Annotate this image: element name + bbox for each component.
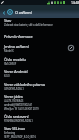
staticText: Zobrazit stav baterie, sítě a další info… (4, 23, 53, 27)
staticText: Číslo sestavení (4, 114, 29, 119)
button[interactable]: Stav SELinux (0, 124, 79, 140)
staticText: Právní informace (4, 34, 33, 39)
staticText: Číslo modelu (4, 57, 26, 62)
staticText: Verze jádra (4, 94, 23, 99)
button[interactable]: Verze Android (0, 66, 79, 79)
button[interactable]: Právní informace (0, 30, 79, 41)
staticText: 14:48 (71, 0, 79, 5)
staticText: Stav (4, 18, 12, 23)
button[interactable]: Verze základního pásma (0, 79, 79, 92)
staticText: Stav SELinux (4, 126, 26, 131)
staticText: Model X (4, 49, 14, 53)
staticText: Enforcing SEPF_SM-G950F_8.0.0_0016 (4, 131, 36, 139)
button[interactable]: Číslo sestavení (0, 112, 79, 124)
staticText: 8.0.0 (4, 74, 10, 78)
staticText: Jméno zařízení (4, 44, 29, 49)
button[interactable]: Stav (0, 18, 79, 30)
staticText: Verze základního pásma (4, 82, 45, 87)
button[interactable]: Upravit jméno zařízení (67, 44, 75, 52)
staticText: Verze Android (4, 69, 28, 74)
button[interactable]: Zpět (0, 9, 7, 16)
staticText: 4.4.78-15090843 android@SWDD5902 #1 Wed … (4, 99, 39, 111)
button[interactable]: Verze jádra (0, 92, 79, 112)
staticText: O zařízení (15, 10, 32, 15)
button[interactable]: Jméno zařízení (0, 41, 79, 54)
button[interactable]: Číslo modelu (0, 54, 79, 67)
staticText: SM-G950F (4, 62, 16, 66)
staticText: R16NW.G950FXXU5DSL1 (4, 119, 33, 123)
staticText: G950FXXU5DSL1 (4, 87, 24, 91)
